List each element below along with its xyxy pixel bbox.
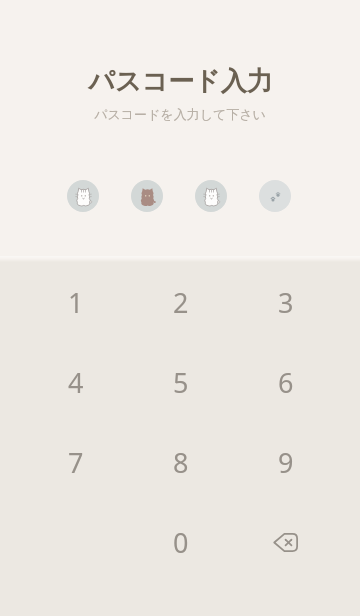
- button[interactable]: Delete: [233, 502, 338, 582]
- staticText: 1: [68, 284, 84, 321]
- staticText: 5: [173, 364, 189, 401]
- staticText: 9: [278, 444, 294, 481]
- button[interactable]: 6: [233, 342, 338, 422]
- button[interactable]: 4: [24, 342, 128, 422]
- staticText: 6: [278, 364, 294, 401]
- button[interactable]: 0: [128, 502, 233, 582]
- staticText: 7: [68, 444, 84, 481]
- button[interactable]: 1: [24, 262, 128, 342]
- staticText: 8: [173, 444, 189, 481]
- staticText: 0: [173, 524, 189, 561]
- staticText: 2: [173, 284, 189, 321]
- button[interactable]: 7: [24, 422, 128, 502]
- staticText: パスコード入力: [88, 65, 273, 98]
- button[interactable]: 8: [128, 422, 233, 502]
- button[interactable]: 3: [233, 262, 338, 342]
- staticText: 3: [278, 284, 294, 321]
- button[interactable]: 2: [128, 262, 233, 342]
- button[interactable]: 9: [233, 422, 338, 502]
- staticText: 4: [68, 364, 84, 401]
- button[interactable]: 5: [128, 342, 233, 422]
- staticText: パスコードを入力して下さい: [94, 106, 266, 122]
